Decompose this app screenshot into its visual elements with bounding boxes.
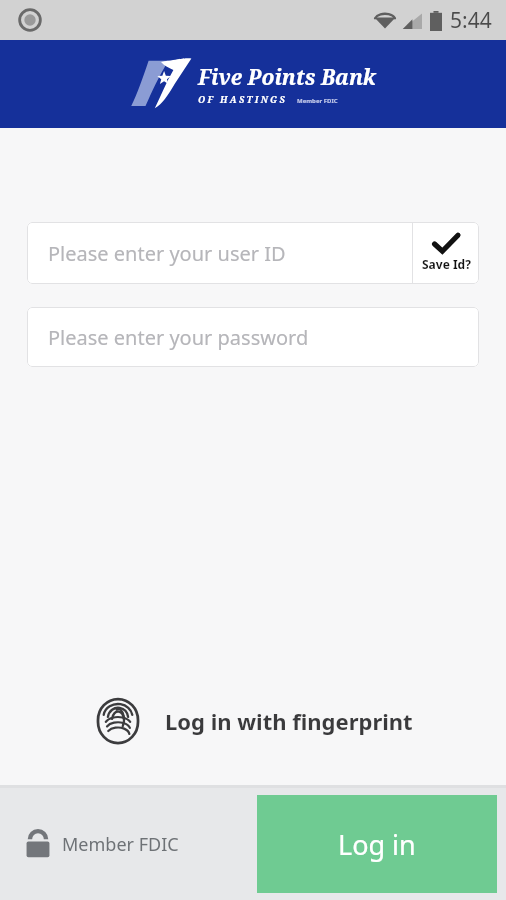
staticText: Please enter your password: [48, 324, 309, 351]
button[interactable]: Member FDIC: [25, 829, 179, 859]
button[interactable]: Save Id: [413, 222, 479, 284]
button[interactable]: Log in with fingerprint: [0, 690, 506, 752]
staticText: Member FDIC: [62, 832, 179, 857]
staticText: Save Id?: [422, 256, 471, 272]
staticText: 5:44: [450, 6, 492, 35]
staticText: Log in: [338, 826, 416, 863]
staticText: Five Points Bank: [198, 63, 376, 92]
button[interactable]: Please enter your password: [27, 307, 479, 367]
staticText: O F H A S T I N G S: [198, 93, 285, 105]
staticText: Please enter your user ID: [48, 240, 286, 267]
button[interactable]: Please enter your user ID: [27, 222, 412, 284]
staticText: Log in with fingerprint: [165, 706, 413, 736]
button[interactable]: Log in: [257, 795, 497, 893]
staticText: Member FDIC: [297, 97, 338, 105]
